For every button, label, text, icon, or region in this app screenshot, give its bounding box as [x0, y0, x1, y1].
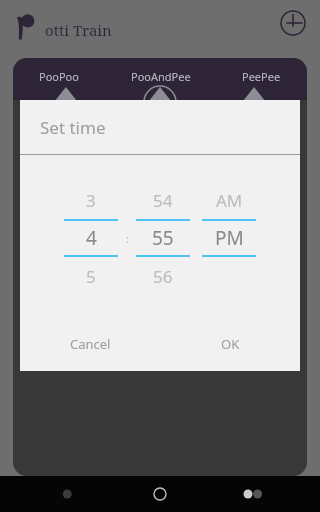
staticText: 4: [86, 225, 97, 251]
button[interactable]: AM: [199, 183, 259, 293]
button[interactable]: OK: [160, 317, 300, 371]
staticText: Set time: [40, 116, 106, 139]
staticText: 5: [86, 265, 96, 288]
staticText: PooAndPee: [131, 69, 191, 84]
staticText: :: [126, 231, 129, 246]
button[interactable]: PooAndPee: [127, 67, 195, 86]
staticText: 3: [86, 189, 96, 212]
staticText: PeePee: [242, 69, 281, 84]
staticText: PM: [215, 225, 244, 251]
staticText: 54: [153, 189, 173, 212]
staticText: OK: [221, 335, 240, 353]
button[interactable]: Clock: [276, 6, 310, 40]
staticText: Cancel: [70, 335, 111, 353]
button[interactable]: Cancel: [20, 317, 160, 371]
staticText: 55: [152, 225, 174, 251]
button[interactable]: PeePee: [238, 67, 285, 86]
staticText: PooPoo: [39, 69, 79, 84]
button[interactable]: 54: [133, 183, 193, 293]
staticText: 56: [153, 265, 173, 288]
button[interactable]: PooPoo: [35, 67, 83, 86]
staticText: otti Train: [45, 20, 112, 40]
staticText: AM: [216, 189, 243, 212]
button[interactable]: 3: [61, 183, 121, 293]
